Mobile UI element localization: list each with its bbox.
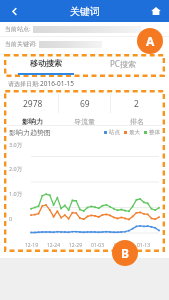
staticText: 站点 xyxy=(109,129,120,136)
button[interactable]: Back xyxy=(0,0,28,22)
button[interactable]: Annotation marker B xyxy=(112,240,138,266)
staticText: 关键词 xyxy=(70,5,100,18)
staticText: A xyxy=(146,33,155,49)
staticText: 01-08 xyxy=(114,242,128,249)
staticText: 0 xyxy=(9,215,13,222)
staticText: 当前关键词: xyxy=(5,40,37,48)
staticText: 移动搜索 xyxy=(30,58,62,68)
button[interactable]: Annotation marker A xyxy=(137,28,163,54)
staticText: B xyxy=(121,245,129,261)
staticText: 排名 xyxy=(130,117,144,125)
staticText: 导流量 xyxy=(74,117,95,125)
staticText: 01-13 xyxy=(137,242,151,249)
staticText: 12-29 xyxy=(69,242,83,249)
button[interactable]: 69 xyxy=(59,92,110,125)
staticText: 影响力趋势图 xyxy=(9,128,51,137)
button[interactable]: 2 xyxy=(111,92,162,125)
staticText: 2.0万 xyxy=(9,165,23,173)
staticText: 影响力 xyxy=(22,117,43,125)
staticText: 2 xyxy=(134,98,139,110)
button[interactable]: PC搜索 xyxy=(84,54,162,77)
staticText: 69 xyxy=(80,98,90,110)
staticText: 12-19 xyxy=(25,242,39,249)
staticText: 01-03 xyxy=(91,242,105,249)
staticText: 当前站点: xyxy=(5,25,31,33)
staticText: 2016-01-15 xyxy=(40,79,74,88)
button[interactable]: 移动搜索 xyxy=(7,54,84,77)
staticText: 3.0万 xyxy=(9,141,23,149)
staticText: 请选择日期: xyxy=(8,80,40,88)
staticText: 整体 xyxy=(149,129,160,136)
staticText: 1.0万 xyxy=(9,190,23,198)
staticText: 12-24 xyxy=(47,242,61,249)
staticText: 最大 xyxy=(129,129,140,136)
button[interactable]: 2978 xyxy=(7,92,58,125)
button[interactable]: Home xyxy=(143,0,169,22)
staticText: PC搜索 xyxy=(110,58,136,69)
staticText: 2978 xyxy=(23,98,43,110)
